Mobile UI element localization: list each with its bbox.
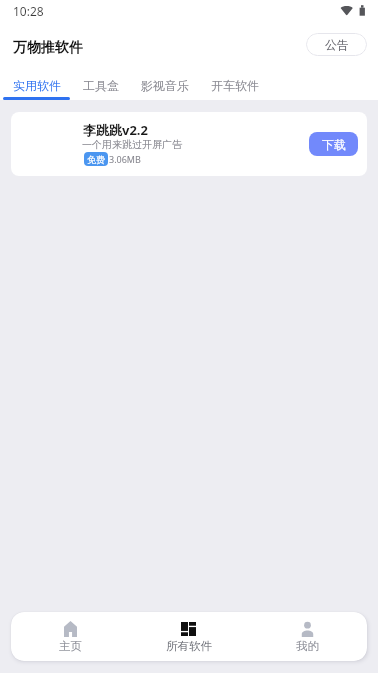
- staticText: 李跳跳v2.2: [83, 121, 148, 139]
- button[interactable]: 我的: [248, 612, 367, 661]
- button[interactable]: 影视音乐: [130, 70, 200, 100]
- button[interactable]: 所有软件: [129, 612, 248, 661]
- button[interactable]: 下载: [309, 132, 358, 156]
- staticText: 3.06MB: [109, 153, 141, 165]
- button[interactable]: 主页: [11, 612, 129, 661]
- button[interactable]: 实用软件: [2, 70, 72, 100]
- button[interactable]: 工具盒: [72, 70, 130, 100]
- staticText: 工具盒: [83, 78, 119, 93]
- other: Wifi and battery status: [340, 4, 366, 16]
- staticText: 影视音乐: [141, 78, 189, 93]
- staticText: 一个用来跳过开屏广告: [82, 138, 182, 151]
- staticText: 开车软件: [211, 78, 259, 93]
- staticText: 下载: [322, 137, 346, 152]
- staticText: 免费: [87, 154, 105, 165]
- staticText: 所有软件: [166, 639, 212, 653]
- staticText: 公告: [325, 37, 349, 52]
- staticText: 万物推软件: [13, 39, 83, 57]
- staticText: 我的: [296, 639, 319, 653]
- staticText: 主页: [59, 639, 82, 653]
- button[interactable]: 公告: [306, 33, 367, 56]
- staticText: 10:28: [13, 3, 44, 19]
- button[interactable]: 李跳跳v2.2: [11, 112, 367, 176]
- button[interactable]: 开车软件: [200, 70, 270, 100]
- staticText: 实用软件: [13, 78, 61, 93]
